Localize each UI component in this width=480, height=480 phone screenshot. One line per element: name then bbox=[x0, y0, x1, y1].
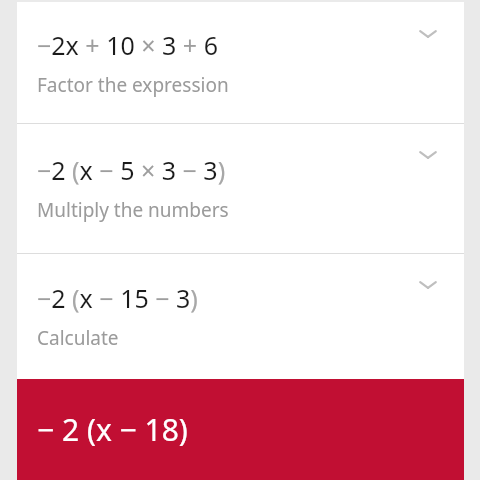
button[interactable]: −2 (x − 5 × 3 − 3) bbox=[17, 123, 464, 253]
button[interactable]: − 2 (x − 18) bbox=[17, 379, 464, 480]
button[interactable]: Expand step bbox=[410, 267, 446, 303]
staticText: −2 (x − 15 − 3) bbox=[37, 281, 198, 315]
button[interactable]: −2 (x − 15 − 3) bbox=[17, 253, 464, 379]
staticText: Multiply the numbers bbox=[37, 197, 229, 223]
staticText: Factor the expression bbox=[37, 72, 229, 98]
button[interactable]: −2x + 10 × 3 + 6 bbox=[17, 2, 464, 123]
staticText: − 2 (x − 18) bbox=[37, 409, 188, 450]
staticText: −2 (x − 5 × 3 − 3) bbox=[37, 153, 226, 187]
button[interactable]: Expand step bbox=[410, 16, 446, 52]
staticText: −2x + 10 × 3 + 6 bbox=[37, 28, 218, 62]
button[interactable]: Expand step bbox=[410, 137, 446, 173]
staticText: Calculate bbox=[37, 325, 119, 351]
